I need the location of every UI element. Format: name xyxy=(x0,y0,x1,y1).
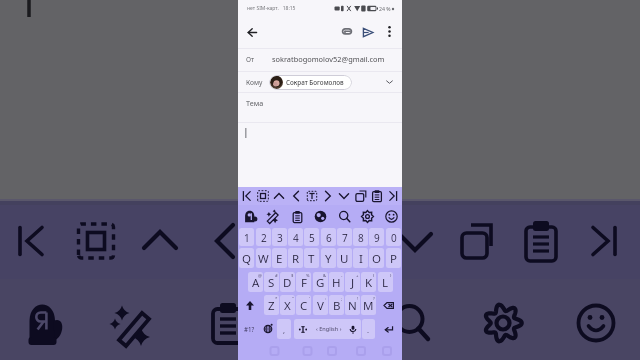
staticText: ? xyxy=(373,296,375,302)
button[interactable]: Paste xyxy=(369,187,384,205)
staticText: Y xyxy=(325,251,332,267)
button[interactable] xyxy=(238,122,402,186)
staticText: U xyxy=(340,251,349,267)
button[interactable]: A xyxy=(248,272,263,292)
staticText: ' xyxy=(309,296,310,302)
staticText: * xyxy=(275,296,278,302)
button[interactable]: I xyxy=(353,248,368,268)
staticText: 6 xyxy=(326,231,332,245)
button[interactable]: W xyxy=(256,248,271,268)
staticText: D xyxy=(283,275,292,291)
button[interactable]: D xyxy=(280,272,295,292)
staticText: Тема xyxy=(246,98,264,108)
button[interactable]: 4 xyxy=(288,228,303,246)
button[interactable]: Сократ Богомолов xyxy=(269,75,352,90)
button[interactable]: Select all xyxy=(255,187,270,205)
staticText: 9 xyxy=(374,231,380,245)
button[interactable]: Move to end xyxy=(385,187,400,205)
button[interactable]: J xyxy=(345,272,360,292)
button[interactable]: More options xyxy=(379,21,399,41)
staticText: 4 xyxy=(293,231,299,245)
button[interactable]: C xyxy=(296,295,311,315)
button[interactable]: 8 xyxy=(353,228,368,246)
staticText: " xyxy=(292,296,294,302)
button[interactable]: Move up xyxy=(271,187,286,205)
staticText: % xyxy=(306,273,310,279)
button[interactable]: M xyxy=(361,295,376,315)
button[interactable]: Move right xyxy=(320,187,335,205)
button[interactable]: Search xyxy=(334,205,354,228)
button[interactable]: Enter xyxy=(378,319,399,339)
button[interactable]: 5 xyxy=(304,228,319,246)
button[interactable]: Тема xyxy=(238,92,402,122)
button[interactable]: Backspace xyxy=(378,295,400,315)
button[interactable]: N xyxy=(345,295,360,315)
button[interactable]: Move to start xyxy=(239,187,254,205)
button[interactable]: Move down xyxy=(336,187,351,205)
button[interactable]: T xyxy=(304,248,319,268)
staticText: C xyxy=(300,298,308,314)
staticText: X xyxy=(284,298,291,314)
button[interactable]: F xyxy=(296,272,311,292)
staticText: E xyxy=(276,251,283,267)
staticText: G xyxy=(316,275,325,291)
button[interactable]: От xyxy=(238,48,402,70)
button[interactable]: 2 xyxy=(256,228,271,246)
button[interactable]: Translate xyxy=(310,205,330,228)
button[interactable]: Settings xyxy=(357,205,377,228)
button[interactable]: Attach file xyxy=(336,21,357,42)
button[interactable]: B xyxy=(329,295,344,315)
button[interactable]: 7 xyxy=(337,228,352,246)
button[interactable]: Yandex xyxy=(240,205,260,228)
button[interactable]: #1? xyxy=(240,319,258,339)
button[interactable]: Q xyxy=(239,248,254,268)
button[interactable]: H xyxy=(329,272,344,292)
button[interactable]: Z xyxy=(264,295,279,315)
button[interactable]: 0 xyxy=(386,228,401,246)
button[interactable]: 3 xyxy=(272,228,287,246)
button[interactable]: E xyxy=(272,248,287,268)
button[interactable]: G xyxy=(313,272,328,292)
staticText: M xyxy=(363,298,374,314)
button[interactable]: Smart reply xyxy=(263,205,283,228)
button[interactable]: X xyxy=(280,295,295,315)
staticText: ) xyxy=(390,273,392,279)
button[interactable]: Move left xyxy=(288,187,303,205)
button[interactable]: V xyxy=(313,295,328,315)
button[interactable]: P xyxy=(386,248,401,268)
button[interactable]: Emoji xyxy=(381,205,401,228)
staticText: - xyxy=(341,273,343,279)
button[interactable]: Change keyboard language xyxy=(259,319,277,339)
staticText: F xyxy=(301,275,307,291)
button[interactable]: U xyxy=(337,248,352,268)
button[interactable]: 9 xyxy=(369,228,384,246)
staticText: S xyxy=(268,275,275,291)
button[interactable]: S xyxy=(264,272,279,292)
staticText: A xyxy=(252,275,260,291)
staticText: W xyxy=(258,251,269,267)
button[interactable]: 6 xyxy=(321,228,336,246)
button[interactable]: Select text xyxy=(304,187,319,205)
button[interactable]: R xyxy=(288,248,303,268)
button[interactable]: Y xyxy=(321,248,336,268)
staticText: 8 xyxy=(358,231,364,245)
staticText: $ xyxy=(291,273,294,279)
staticText: L xyxy=(382,275,389,291)
button[interactable]: O xyxy=(369,248,384,268)
button[interactable]: Copy xyxy=(353,187,368,205)
button[interactable]: , xyxy=(277,319,291,339)
button[interactable]: Send xyxy=(357,21,379,43)
staticText: & xyxy=(323,273,327,279)
button[interactable]: . xyxy=(362,319,375,339)
button[interactable]: ‹ English › xyxy=(294,319,361,339)
button[interactable]: 1 xyxy=(239,228,254,246)
staticText: 0 xyxy=(391,231,397,245)
button[interactable]: Clipboard xyxy=(287,205,307,228)
staticText: J xyxy=(351,275,355,291)
button[interactable]: L xyxy=(378,272,393,292)
staticText: V xyxy=(317,298,324,314)
button[interactable]: Back xyxy=(241,21,263,43)
button[interactable]: K xyxy=(361,272,376,292)
button[interactable]: Expand recipients xyxy=(380,73,398,91)
button[interactable]: Shift xyxy=(239,295,261,315)
